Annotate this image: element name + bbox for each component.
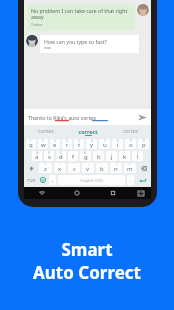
- staticText: d: [59, 153, 63, 161]
- button[interactable]: Backspace: [137, 163, 150, 173]
- staticText: $: [60, 151, 62, 155]
- staticText: l: [137, 153, 139, 161]
- button[interactable]: 6: [86, 139, 97, 149]
- staticText: b: [100, 165, 104, 173]
- button[interactable]: 4: [62, 139, 72, 149]
- button[interactable]: *: [39, 163, 52, 173]
- staticText: 4: [66, 139, 68, 143]
- button[interactable]: cortex: [109, 125, 151, 138]
- staticText: ': [74, 163, 75, 167]
- button[interactable]: Thanks to Kika's auto cortex: [28, 111, 136, 123]
- button[interactable]: ': [68, 163, 80, 173]
- staticText: 0: [143, 139, 145, 143]
- button[interactable]: 2: [38, 139, 48, 149]
- staticText: q: [29, 141, 33, 149]
- button[interactable]: Emoji: [38, 175, 48, 185]
- staticText: 1: [30, 139, 32, 143]
- staticText: :: [88, 163, 89, 167]
- staticText: ?123: [27, 178, 36, 183]
- button[interactable]: _: [68, 151, 78, 161]
- staticText: 9: [130, 139, 132, 143]
- staticText: a: [35, 153, 39, 161]
- staticText: f: [72, 153, 75, 161]
- button[interactable]: .: [127, 175, 134, 185]
- staticText: now: [44, 45, 52, 50]
- staticText: (: [124, 151, 125, 155]
- staticText: No problem I can take care of that right…: [31, 7, 131, 21]
- staticText: r: [66, 141, 69, 149]
- button[interactable]: -: [93, 151, 104, 161]
- staticText: ": [59, 163, 61, 167]
- staticText: !: [116, 163, 117, 167]
- staticText: s: [48, 153, 51, 161]
- staticText: +: [111, 151, 113, 155]
- button[interactable]: correct: [67, 125, 109, 138]
- button[interactable]: How can you type so fast?: [40, 35, 139, 53]
- button[interactable]: ?123: [25, 175, 38, 185]
- staticText: k: [123, 153, 127, 161]
- button[interactable]: No problem I can take care of that right…: [27, 4, 135, 30]
- staticText: y: [90, 141, 94, 149]
- staticText: p: [142, 141, 146, 149]
- button[interactable]: Back: [24, 187, 59, 199]
- staticText: ,: [52, 176, 54, 184]
- staticText: #: [48, 151, 50, 155]
- staticText: m: [127, 165, 133, 173]
- button[interactable]: 8: [112, 139, 123, 149]
- button[interactable]: (: [119, 151, 130, 161]
- button[interactable]: :: [82, 163, 94, 173]
- staticText: ?: [129, 163, 131, 167]
- button[interactable]: Shift: [25, 163, 38, 173]
- staticText: cortex: [123, 128, 138, 135]
- button[interactable]: 9: [125, 139, 136, 149]
- button[interactable]: [26, 35, 38, 47]
- staticText: ): [137, 151, 138, 155]
- button[interactable]: @: [32, 151, 42, 161]
- staticText: -: [98, 151, 99, 155]
- staticText: &: [84, 151, 87, 155]
- staticText: _: [72, 151, 74, 155]
- staticText: o: [129, 141, 133, 149]
- staticText: g: [84, 153, 88, 161]
- staticText: u: [103, 141, 107, 149]
- button[interactable]: #: [44, 151, 54, 161]
- button[interactable]: 0: [138, 139, 149, 149]
- button[interactable]: Home: [59, 187, 95, 199]
- button[interactable]: [137, 4, 149, 16]
- button[interactable]: 5: [74, 139, 84, 149]
- button[interactable]: ): [132, 151, 143, 161]
- button[interactable]: 1: [26, 139, 36, 149]
- button[interactable]: Recents: [95, 187, 131, 199]
- button[interactable]: ": [54, 163, 66, 173]
- button[interactable]: ;: [96, 163, 108, 173]
- button[interactable]: ,: [49, 175, 56, 185]
- staticText: 6: [91, 139, 93, 143]
- staticText: English (US): [80, 178, 103, 183]
- button[interactable]: 3: [50, 139, 60, 149]
- button[interactable]: ?: [124, 163, 136, 173]
- staticText: *: [45, 163, 47, 167]
- staticText: j: [111, 153, 113, 161]
- button[interactable]: &: [80, 151, 91, 161]
- staticText: z: [44, 165, 47, 173]
- button[interactable]: Enter: [135, 175, 150, 185]
- staticText: c: [73, 165, 76, 173]
- staticText: cornex: [38, 128, 54, 135]
- button[interactable]: English (US): [58, 175, 125, 185]
- button[interactable]: $: [56, 151, 66, 161]
- staticText: n: [114, 165, 118, 173]
- staticText: x: [58, 165, 62, 173]
- staticText: .: [130, 176, 132, 184]
- button[interactable]: 7: [99, 139, 110, 149]
- button[interactable]: +: [106, 151, 117, 161]
- button[interactable]: Send: [136, 111, 148, 123]
- staticText: e: [53, 141, 57, 149]
- button[interactable]: cornex: [24, 125, 67, 138]
- button[interactable]: Switch keyboard: [131, 187, 151, 199]
- staticText: correct: [78, 128, 98, 135]
- staticText: Thanks to Kika's auto cortex: [28, 114, 96, 121]
- staticText: 3 mins: [31, 22, 43, 27]
- staticText: How can you type so fast?: [44, 38, 107, 45]
- button[interactable]: !: [110, 163, 122, 173]
- staticText: h: [97, 153, 101, 161]
